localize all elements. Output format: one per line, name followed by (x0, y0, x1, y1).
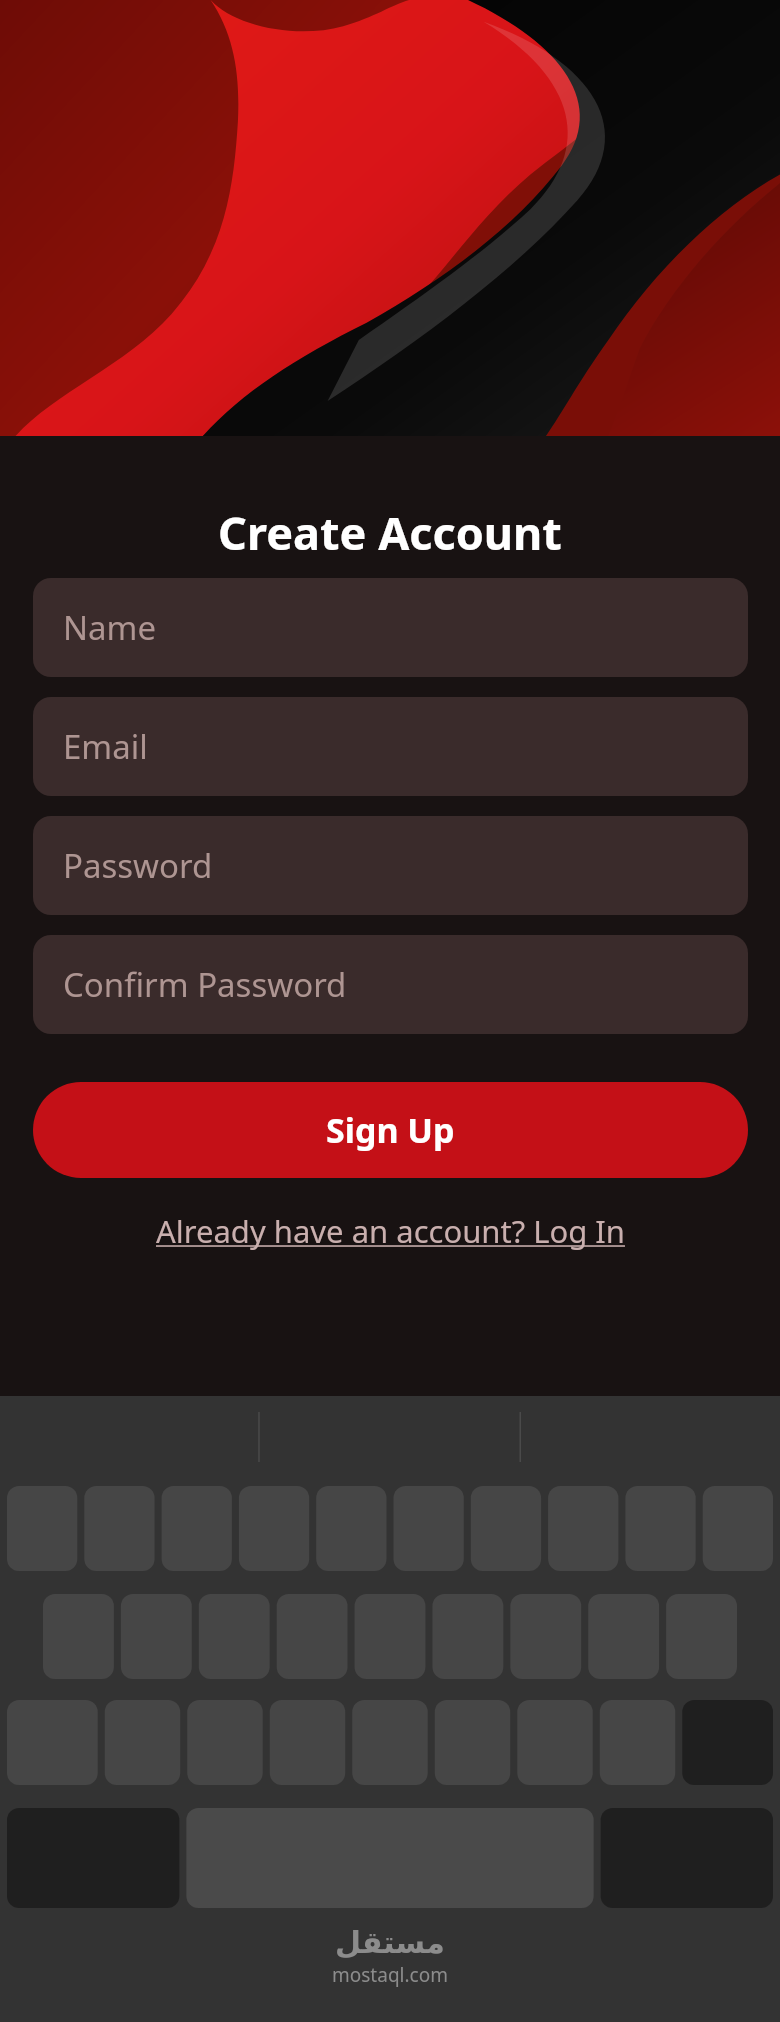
button[interactable]: Key (234, 1486, 312, 1571)
staticText: Password (63, 843, 213, 888)
button[interactable]: Key (693, 1703, 780, 1788)
button[interactable]: Key (78, 1486, 156, 1571)
button[interactable]: Key (345, 1703, 432, 1788)
button[interactable]: Key (172, 1594, 258, 1679)
button[interactable]: Key (432, 1703, 519, 1788)
button[interactable]: Email (33, 697, 748, 796)
button[interactable]: Key (258, 1703, 345, 1788)
button[interactable]: Key (468, 1486, 546, 1571)
button[interactable]: Key (693, 1594, 780, 1679)
button[interactable]: Key (0, 1703, 86, 1788)
button[interactable]: Key (702, 1486, 780, 1571)
button[interactable]: Key (519, 1703, 606, 1788)
button[interactable]: Confirm Password (33, 935, 748, 1034)
button[interactable]: Key (546, 1486, 624, 1571)
button[interactable]: Key (624, 1486, 702, 1571)
button[interactable]: Key (519, 1594, 606, 1679)
staticText: مستقل (335, 1925, 445, 1960)
button[interactable]: Key (156, 1486, 234, 1571)
button[interactable]: Key (606, 1594, 693, 1679)
staticText: Confirm Password (63, 962, 347, 1007)
button[interactable]: Symbols (0, 1811, 187, 1911)
button[interactable]: Password (33, 816, 748, 915)
staticText: Already have an account? Log In (156, 1210, 625, 1252)
button[interactable]: Key (0, 1486, 78, 1571)
staticText: Email (63, 724, 148, 769)
button[interactable]: Key (172, 1703, 258, 1788)
staticText: Sign Up (326, 1107, 455, 1153)
staticText: mostaql.com (332, 1962, 448, 1988)
button[interactable]: Sign Up (33, 1082, 748, 1178)
button[interactable]: Key (86, 1594, 172, 1679)
button[interactable]: Name (33, 578, 748, 677)
staticText: Name (63, 605, 157, 650)
button[interactable]: Key (390, 1486, 468, 1571)
button[interactable]: Key (258, 1594, 345, 1679)
button[interactable]: Key (606, 1703, 693, 1788)
button[interactable]: Key (345, 1594, 432, 1679)
button[interactable]: Enter (593, 1811, 780, 1911)
button[interactable]: Key (0, 1594, 86, 1679)
button[interactable]: Key (432, 1594, 519, 1679)
button[interactable]: Already have an account? Log In (33, 1210, 748, 1252)
button[interactable]: Key (86, 1703, 172, 1788)
button[interactable]: Key (312, 1486, 390, 1571)
staticText: Create Account (0, 502, 780, 563)
button[interactable]: Space (187, 1811, 593, 1911)
